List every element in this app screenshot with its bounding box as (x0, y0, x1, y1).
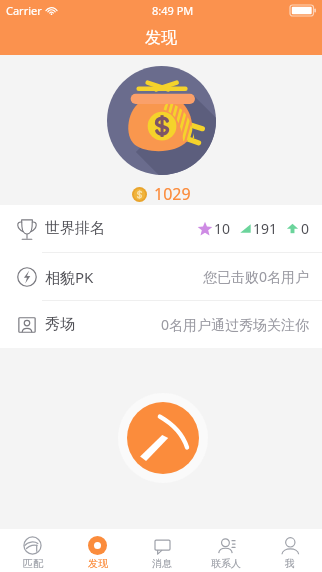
staticText: 消息 (152, 557, 172, 570)
staticText: 10 (214, 219, 231, 238)
staticText: Carrier (6, 3, 42, 18)
button[interactable]: 联系人 (194, 529, 258, 572)
button[interactable]: 相貌PK (0, 253, 322, 300)
staticText: 0名用户通过秀场关注你 (161, 315, 310, 334)
staticText: 联系人 (211, 557, 241, 570)
staticText: 我 (285, 557, 295, 570)
staticText: 您已击败0名用户 (203, 267, 310, 286)
button[interactable]: 消息 (130, 529, 194, 572)
staticText: 1029 (154, 183, 191, 205)
staticText: 相貌PK (45, 267, 94, 287)
staticText: 191 (253, 219, 278, 238)
staticText: 秀场 (45, 315, 75, 334)
staticText: 匹配 (23, 557, 43, 570)
staticText: 发现 (145, 28, 177, 48)
button[interactable]: 世界排名 (0, 205, 322, 252)
staticText: 8:49 PM (152, 3, 194, 18)
button[interactable]: 匹配 (0, 529, 65, 572)
button[interactable]: 发现 (65, 529, 130, 572)
button[interactable]: 开始挖矿 (118, 393, 208, 483)
button[interactable]: 我 (258, 529, 322, 572)
button[interactable]: 秀场 (0, 301, 322, 348)
staticText: 世界排名 (45, 219, 105, 238)
staticText: 发现 (88, 557, 108, 570)
staticText: 0 (301, 219, 310, 238)
